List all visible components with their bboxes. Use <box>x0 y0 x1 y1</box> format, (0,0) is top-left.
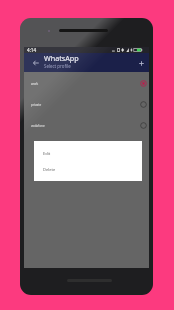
button[interactable]: Navigate up <box>28 55 43 70</box>
button[interactable]: Delete <box>34 161 142 177</box>
staticText: Edit <box>43 151 51 156</box>
button[interactable]: Add profile <box>134 56 149 71</box>
staticText: WhatsApp <box>44 53 79 63</box>
button[interactable]: Edit <box>34 145 142 161</box>
button[interactable]: work <box>24 73 149 94</box>
staticText: work <box>31 82 39 86</box>
button[interactable]: private <box>24 94 149 115</box>
button[interactable]: vodafone <box>24 115 149 136</box>
staticText: Delete <box>43 167 56 172</box>
staticText: Select profile <box>44 63 71 69</box>
staticText: private <box>31 103 42 107</box>
staticText: vodafone <box>31 124 45 128</box>
staticText: 4:14 <box>27 47 37 53</box>
